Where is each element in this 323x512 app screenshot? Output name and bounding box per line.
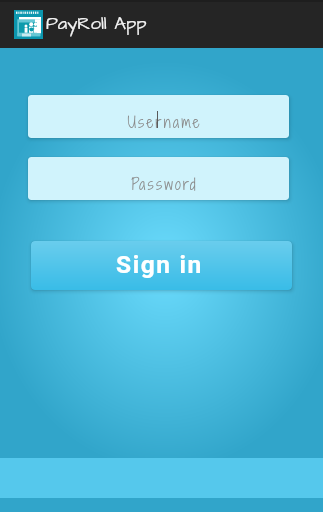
staticText: Password — [131, 173, 198, 195]
staticText: Username — [127, 111, 202, 133]
button[interactable]: Password — [28, 157, 289, 200]
staticText: PayRoll App — [46, 11, 147, 37]
staticText: Sign in — [116, 250, 203, 279]
button[interactable]: Username — [28, 95, 289, 138]
button[interactable]: Sign in — [31, 241, 292, 290]
other: PayRoll App icon — [14, 10, 43, 39]
